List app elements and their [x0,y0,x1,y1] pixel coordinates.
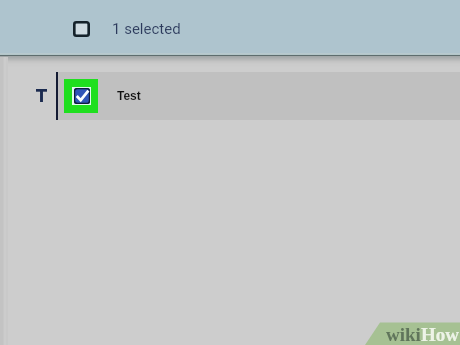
staticText: How [421,324,459,345]
staticText: wiki [386,324,421,345]
staticText: Test [117,89,141,102]
staticText: 1 selected [112,20,181,38]
button[interactable]: Select all [73,21,90,37]
other: Text file [36,89,47,102]
button[interactable]: Checkbox, checked [64,79,98,113]
button[interactable]: Text file [0,72,460,120]
